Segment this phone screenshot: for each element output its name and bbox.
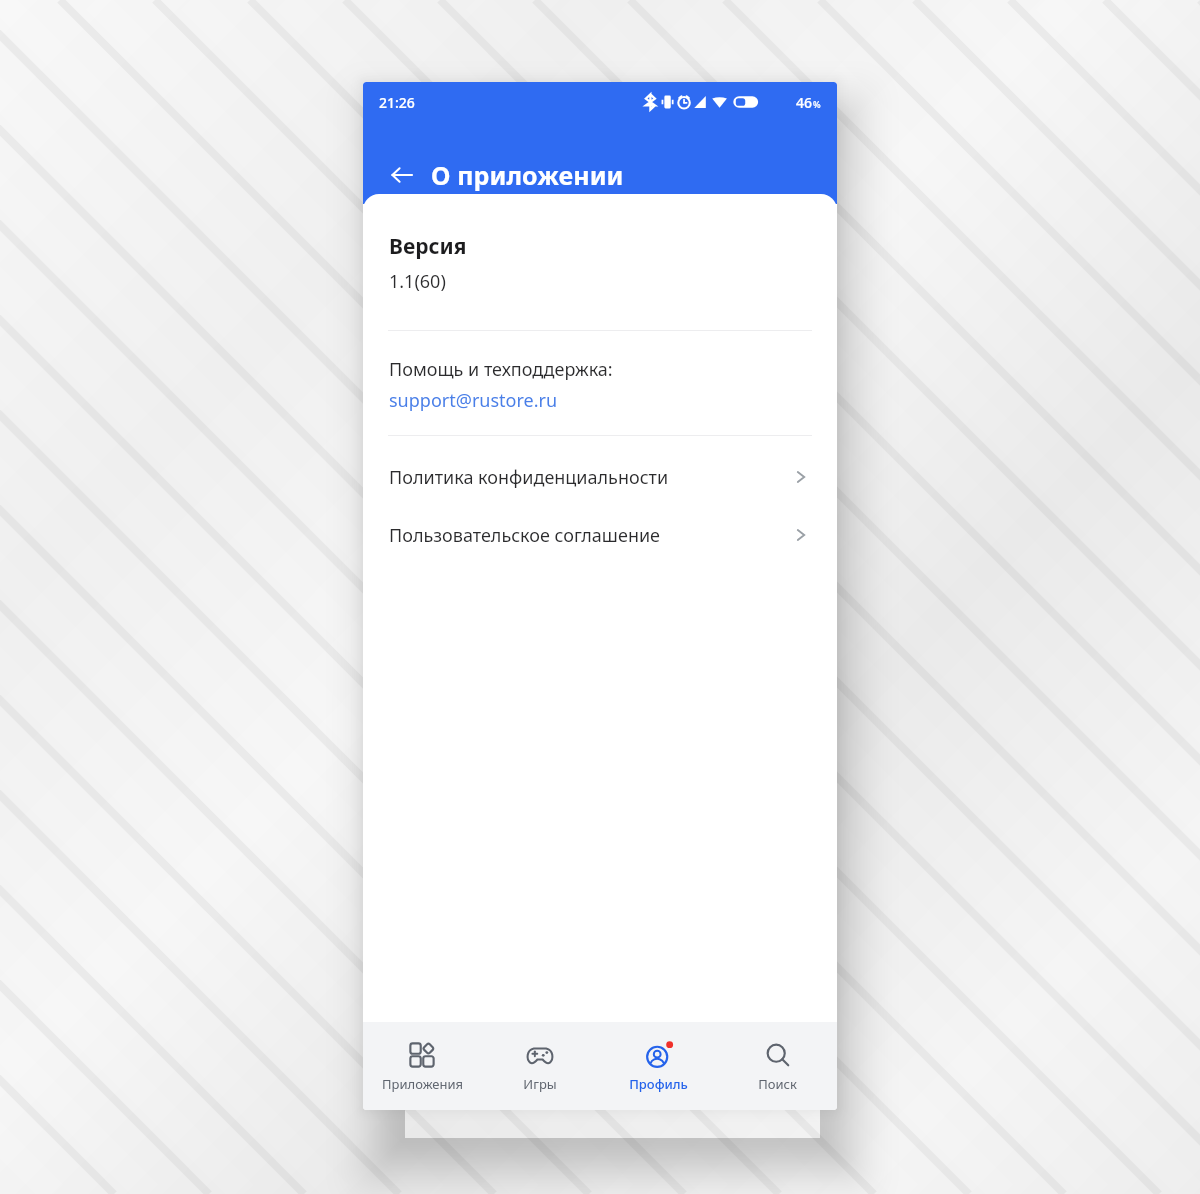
button[interactable]: Игры — [481, 1022, 599, 1110]
staticText: 46 — [796, 93, 813, 112]
button[interactable]: Профиль — [599, 1022, 718, 1110]
staticText: Игры — [523, 1075, 557, 1093]
button[interactable]: Политика конфиденциальности — [363, 448, 837, 506]
staticText: Версия — [389, 232, 467, 261]
staticText: Профиль — [629, 1075, 688, 1093]
staticText: О приложении — [431, 158, 624, 192]
button[interactable]: Пользовательское соглашение — [363, 506, 837, 564]
button[interactable]: Назад — [385, 158, 419, 192]
staticText: Помощь и техподдержка: — [389, 357, 613, 382]
staticText: 1.1(60) — [389, 269, 446, 294]
button[interactable]: Приложения — [363, 1022, 481, 1110]
staticText: % — [813, 98, 821, 110]
staticText: Политика конфиденциальности — [389, 465, 791, 490]
staticText: 21:26 — [379, 93, 415, 112]
button[interactable]: Поиск — [718, 1022, 837, 1110]
staticText: Приложения — [382, 1075, 463, 1093]
staticText: Пользовательское соглашение — [389, 523, 791, 548]
staticText: support@rustore.ru — [389, 388, 558, 413]
staticText: Поиск — [758, 1075, 797, 1093]
button[interactable]: support@rustore.ru — [389, 388, 558, 413]
